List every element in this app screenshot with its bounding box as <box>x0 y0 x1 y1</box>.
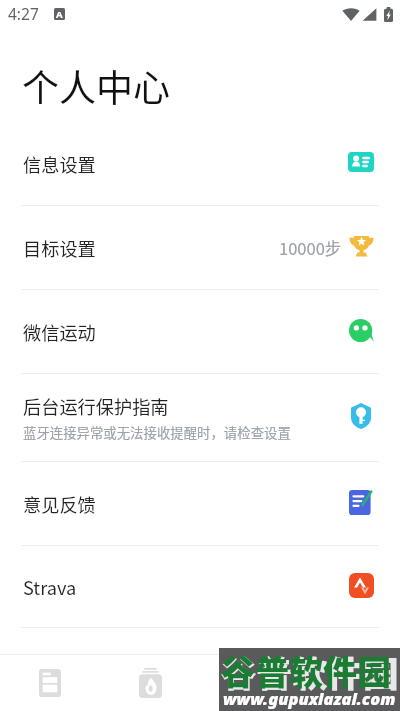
button[interactable]: Device <box>200 655 300 711</box>
staticText: 蓝牙连接异常或无法接收提醒时，请检查设置 <box>23 422 291 441</box>
button[interactable]: Profile <box>300 655 400 711</box>
button[interactable]: Strava <box>0 546 400 627</box>
staticText: Strava <box>23 574 77 600</box>
staticText: 4:27 <box>8 3 39 24</box>
button[interactable]: Calories <box>100 655 200 711</box>
staticText: 个人中心 <box>22 59 170 113</box>
staticText: 微信运动 <box>23 319 96 345</box>
button[interactable]: 后台运行保护指南 <box>0 374 400 461</box>
staticText: 谷普软件园 <box>221 646 399 697</box>
staticText: 意见反馈 <box>23 491 96 517</box>
button[interactable]: 微信运动 <box>0 290 400 373</box>
staticText: 谷普软件园 <box>221 646 391 695</box>
button[interactable]: 目标设置 <box>0 206 400 289</box>
button[interactable]: 信息设置 <box>0 122 400 205</box>
staticText: 10000步 <box>279 236 342 260</box>
staticText: www.gupuxlazal.com <box>223 687 396 709</box>
button[interactable]: Records <box>0 655 100 711</box>
staticText: 后台运行保护指南 <box>23 393 169 419</box>
staticText: A <box>56 8 63 20</box>
staticText: 信息设置 <box>23 151 96 177</box>
staticText: 目标设置 <box>23 235 96 261</box>
button[interactable]: 意见反馈 <box>0 462 400 545</box>
